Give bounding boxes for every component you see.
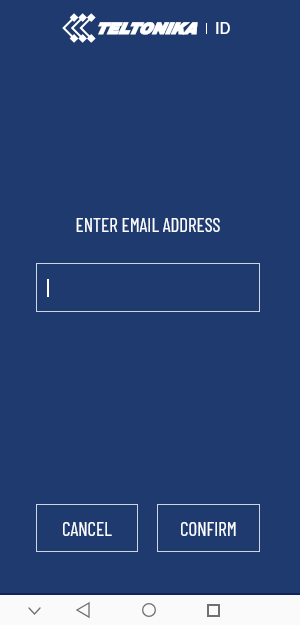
button[interactable]: Back (71, 598, 95, 622)
staticText: CONFIRM (180, 517, 237, 540)
staticText: ID (215, 18, 231, 38)
button[interactable]: Home (137, 598, 161, 622)
button[interactable]: Recent apps (201, 598, 225, 622)
staticText: CANCEL (62, 517, 112, 540)
button[interactable]: Hide keyboard (22, 599, 46, 623)
staticText: TELTONIKA (95, 20, 196, 37)
button[interactable]: CANCEL (36, 504, 138, 552)
button[interactable]: CONFIRM (157, 504, 260, 552)
staticText: ENTER EMAIL ADDRESS (36, 213, 260, 236)
button[interactable] (36, 263, 260, 312)
